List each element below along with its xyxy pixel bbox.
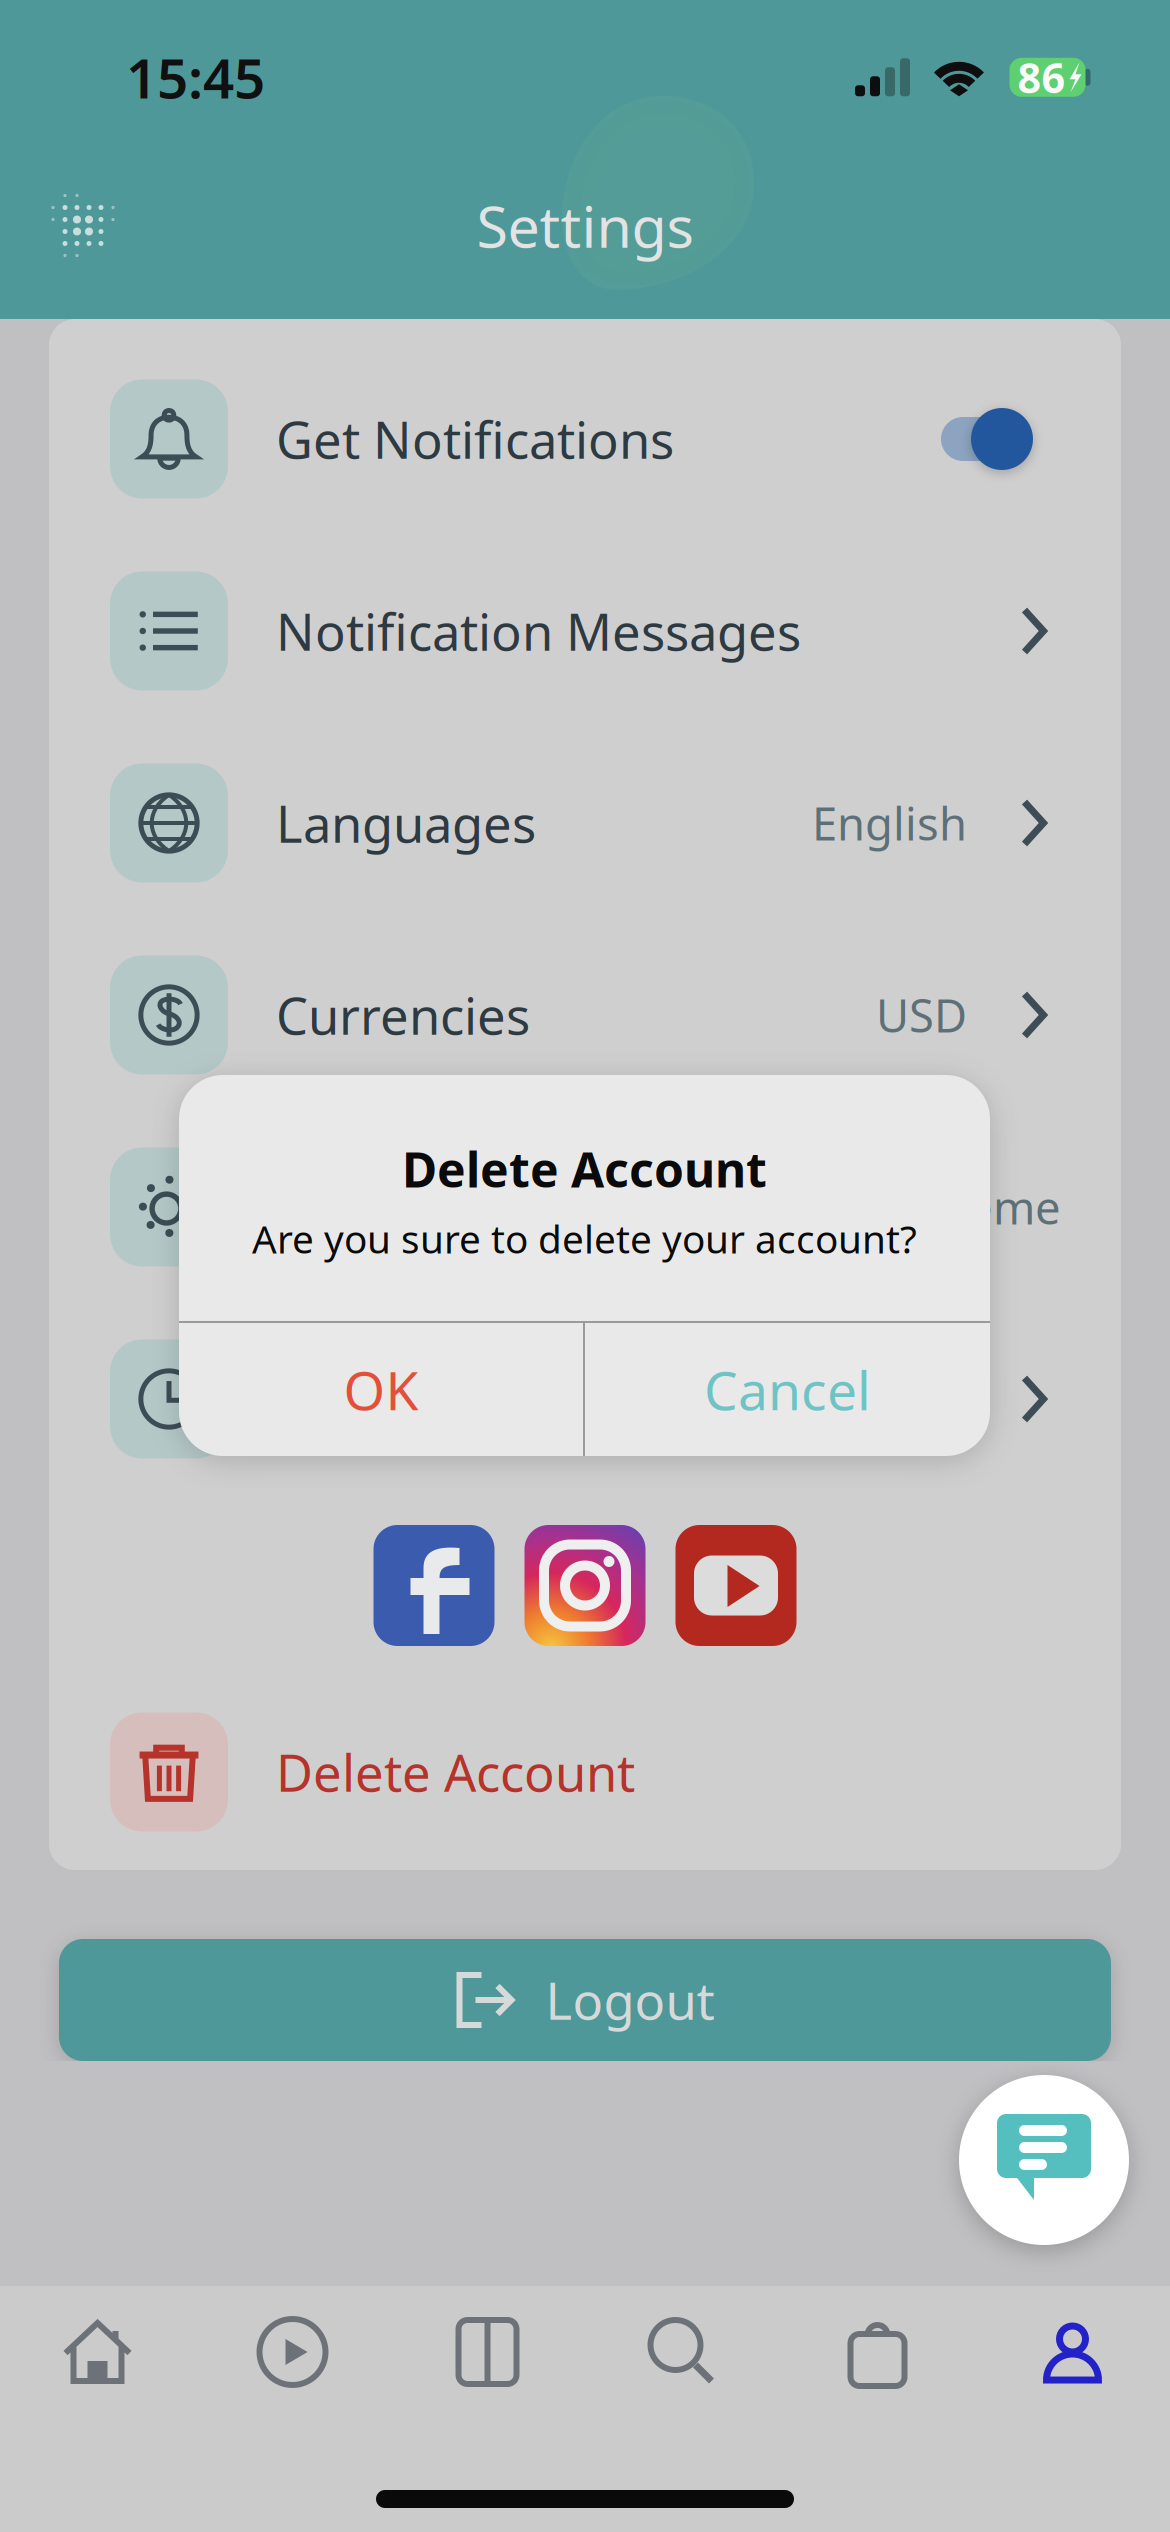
staticText: Settings bbox=[476, 187, 693, 263]
staticText: English bbox=[812, 793, 967, 853]
button[interactable]: Logout bbox=[59, 1939, 1111, 2061]
staticText: USD bbox=[876, 985, 967, 1045]
staticText: History bbox=[276, 1365, 447, 1433]
staticText: Cancel bbox=[704, 1354, 871, 1425]
staticText: Notification Messages bbox=[276, 597, 801, 665]
button[interactable]: Theme bbox=[49, 1111, 1121, 1303]
staticText: Delete Account bbox=[402, 1137, 767, 1201]
button[interactable]: Catalog bbox=[390, 2286, 585, 2418]
button[interactable]: Currencies bbox=[49, 919, 1121, 1111]
staticText: Logout bbox=[545, 1966, 714, 2034]
button[interactable]: YouTube bbox=[675, 1525, 796, 1646]
button[interactable]: Notification Messages bbox=[49, 535, 1121, 727]
button[interactable]: Home bbox=[0, 2286, 195, 2418]
staticText: Get Notifications bbox=[276, 405, 674, 473]
staticText: Currencies bbox=[276, 981, 530, 1049]
staticText: 15:45 bbox=[126, 41, 265, 114]
button[interactable]: Instagram bbox=[524, 1525, 645, 1646]
staticText: 86 bbox=[1017, 50, 1065, 105]
button[interactable]: Get Notifications bbox=[49, 343, 1121, 535]
button[interactable]: Menu bbox=[40, 182, 126, 268]
staticText: OK bbox=[343, 1354, 418, 1425]
button[interactable]: Facebook bbox=[373, 1525, 494, 1646]
button[interactable]: OK bbox=[179, 1323, 583, 1456]
button[interactable]: Videos bbox=[195, 2286, 390, 2418]
button[interactable]: History bbox=[49, 1303, 1121, 1495]
button[interactable]: Bag bbox=[780, 2286, 975, 2418]
staticText: Theme bbox=[276, 1173, 440, 1241]
button[interactable]: Search bbox=[585, 2286, 780, 2418]
button[interactable]: Cancel bbox=[585, 1323, 990, 1456]
staticText: Light Theme bbox=[794, 1177, 1061, 1237]
button[interactable]: Languages bbox=[49, 727, 1121, 919]
staticText: Languages bbox=[276, 789, 536, 857]
staticText: Are you sure to delete your account? bbox=[252, 1213, 917, 1264]
button[interactable]: Get Notifications toggle bbox=[933, 407, 1047, 471]
button[interactable]: Chat support bbox=[959, 2075, 1129, 2245]
staticText: Delete Account bbox=[276, 1738, 635, 1806]
button[interactable]: Profile bbox=[975, 2286, 1170, 2418]
button[interactable]: Delete Account bbox=[49, 1676, 1121, 1868]
